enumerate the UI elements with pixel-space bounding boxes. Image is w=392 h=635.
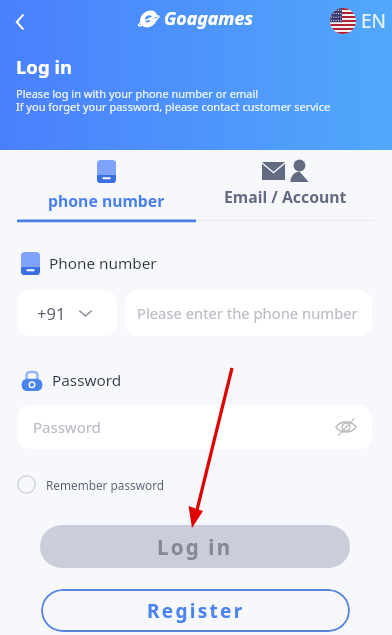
- button[interactable]: phone number: [8, 150, 204, 220]
- staticText: Phone number: [49, 253, 157, 274]
- button[interactable]: +91: [17, 290, 117, 336]
- staticText: Please log in with your phone number or …: [16, 86, 259, 101]
- staticText: Goagames: [164, 6, 253, 30]
- button[interactable]: Language EN: [328, 6, 389, 36]
- button[interactable]: Register: [41, 589, 350, 632]
- staticText: EN: [361, 8, 387, 34]
- staticText: Remember password: [46, 477, 165, 493]
- button[interactable]: Email / Account: [187, 150, 383, 220]
- button[interactable]: Remember password: [16, 474, 166, 495]
- button[interactable]: Please enter the phone number: [125, 290, 372, 336]
- staticText: Log in: [157, 533, 233, 561]
- staticText: If you forget your password, please cont…: [16, 99, 331, 114]
- staticText: Register: [147, 598, 245, 624]
- button[interactable]: Log in: [40, 525, 350, 568]
- staticText: Password: [52, 370, 122, 391]
- staticText: Log in: [16, 54, 72, 79]
- button[interactable]: Back: [3, 5, 37, 39]
- button[interactable]: Password: [17, 405, 372, 449]
- staticText: Please enter the phone number: [137, 303, 358, 323]
- staticText: +91: [37, 302, 66, 324]
- staticText: Password: [33, 417, 101, 437]
- staticText: phone number: [48, 190, 165, 212]
- button[interactable]: Show password: [333, 414, 359, 440]
- staticText: Email / Account: [224, 186, 347, 208]
